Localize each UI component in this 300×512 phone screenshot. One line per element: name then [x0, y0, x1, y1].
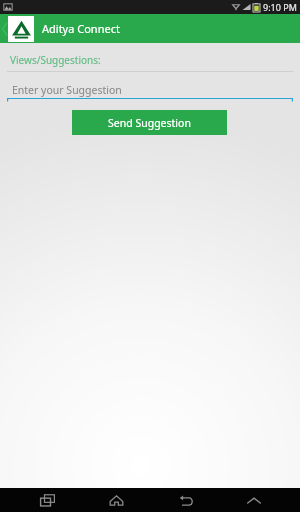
button[interactable]: Home: [96, 488, 136, 512]
button[interactable]: App logo: [8, 16, 34, 42]
staticText: Aditya Connect: [42, 21, 120, 36]
button[interactable]: Recent apps: [27, 488, 67, 512]
staticText: Enter your Suggestion: [12, 83, 122, 97]
staticText: Views/Suggestions:: [10, 53, 101, 67]
button[interactable]: Send Suggestion: [72, 110, 227, 135]
button[interactable]: Back: [165, 488, 205, 512]
button[interactable]: Expand: [234, 488, 274, 512]
staticText: 9:10 PM: [263, 1, 297, 13]
staticText: Send Suggestion: [108, 116, 191, 130]
button[interactable]: Enter your Suggestion: [7, 81, 293, 102]
